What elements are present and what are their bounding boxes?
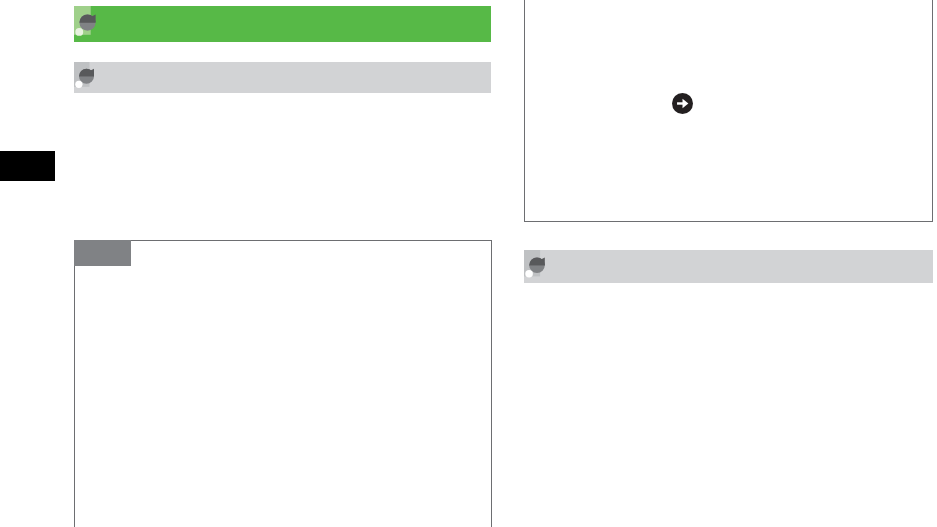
button[interactable] — [524, 250, 933, 283]
button[interactable]: Continue — [672, 93, 693, 114]
button[interactable] — [74, 6, 491, 42]
button[interactable] — [74, 62, 491, 93]
button[interactable]: Continue — [524, 0, 933, 222]
button[interactable] — [74, 240, 492, 527]
